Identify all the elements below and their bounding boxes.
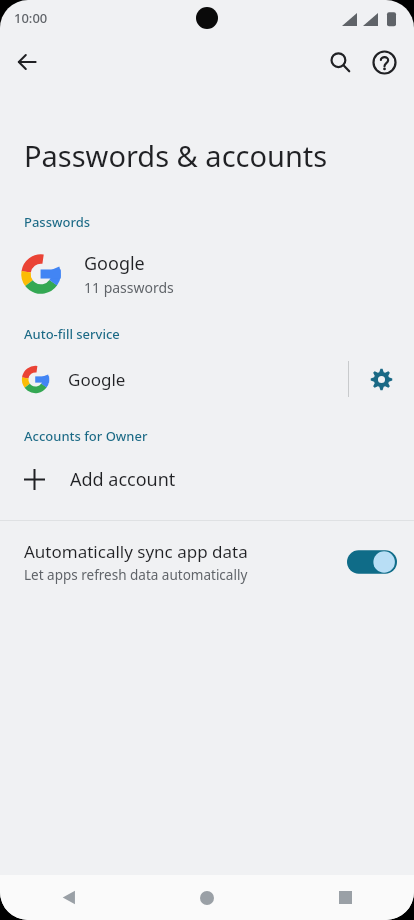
staticText: Accounts for Owner — [24, 427, 148, 445]
button[interactable]: Home — [138, 875, 276, 920]
button[interactable]: Google — [0, 353, 348, 405]
button[interactable]: Back — [7, 42, 47, 82]
button[interactable]: Back — [0, 875, 138, 920]
button[interactable]: Help — [362, 40, 406, 84]
staticText: Auto-fill service — [24, 325, 120, 343]
staticText: Automatically sync app data — [24, 540, 248, 563]
staticText: Add account — [70, 467, 176, 492]
button[interactable]: Recent apps — [276, 875, 414, 920]
button[interactable]: Auto-fill settings — [349, 353, 414, 405]
button[interactable]: Automatically sync app data — [0, 533, 414, 591]
button[interactable]: Google — [0, 245, 414, 303]
button[interactable]: Search — [318, 40, 362, 84]
staticText: Passwords — [24, 213, 91, 231]
staticText: 10:00 — [14, 9, 48, 27]
staticText: 11 passwords — [84, 278, 174, 297]
button[interactable]: Add account — [0, 455, 414, 503]
staticText: Let apps refresh data automatically — [24, 566, 248, 584]
staticText: Passwords & accounts — [24, 136, 328, 175]
staticText: Google — [84, 251, 145, 276]
staticText: Google — [68, 368, 126, 391]
button[interactable]: Automatically sync app data toggle — [347, 547, 397, 577]
